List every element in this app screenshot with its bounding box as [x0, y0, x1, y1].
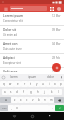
- staticText: ?123: [2, 107, 7, 110]
- staticText: 21 Feb: [52, 70, 61, 72]
- button[interactable]: h: [34, 89, 41, 95]
- button[interactable]: Lorem ipsum: [0, 12, 64, 25]
- staticText: o: [54, 82, 56, 86]
- button[interactable]: Search notes: [10, 6, 47, 11]
- button[interactable]: j: [41, 89, 48, 95]
- staticText: m: [50, 98, 53, 102]
- button[interactable]: t: [28, 81, 34, 87]
- button[interactable]: l: [55, 89, 62, 95]
- button[interactable]: Adipisci: [0, 54, 64, 67]
- button[interactable]: c: [24, 97, 30, 103]
- button[interactable]: d: [14, 89, 20, 95]
- button[interactable]: e: [14, 81, 21, 87]
- staticText: Adipisci: [3, 56, 15, 60]
- staticText: z: [14, 98, 16, 102]
- button[interactable]: g: [27, 89, 34, 95]
- button[interactable]: ipsum: [23, 74, 41, 80]
- staticText: i: [49, 82, 50, 86]
- staticText: Duis aute irure: [3, 47, 22, 51]
- button[interactable]: a: [2, 89, 8, 95]
- button[interactable]: m: [48, 97, 54, 103]
- staticText: Ut enim ad: [3, 33, 17, 37]
- button[interactable]: y: [34, 81, 40, 87]
- staticText: 04 Mar: [52, 42, 61, 46]
- button[interactable]: Settings: [14, 105, 20, 111]
- button[interactable]: f: [20, 89, 27, 95]
- staticText: r: [24, 82, 26, 86]
- staticText: e: [17, 82, 19, 86]
- button[interactable]: i: [46, 81, 52, 87]
- staticText: Velit esse: [3, 70, 18, 72]
- staticText: y: [36, 82, 38, 86]
- staticText: ,: [11, 106, 12, 110]
- staticText: lorem: [10, 75, 18, 79]
- staticText: 09 Mar: [52, 28, 61, 32]
- button[interactable]: v: [30, 97, 36, 103]
- staticText: f: [23, 90, 24, 94]
- staticText: x: [20, 98, 22, 102]
- staticText: Consectetur elit: [3, 19, 23, 23]
- button[interactable]: Amet con: [0, 40, 64, 53]
- button[interactable]: n: [42, 97, 48, 103]
- staticText: ipsum: [28, 75, 37, 79]
- staticText: u: [42, 82, 44, 86]
- staticText: Dolor sit: [3, 28, 16, 32]
- button[interactable]: Back: [10, 112, 18, 120]
- staticText: b: [38, 98, 40, 102]
- staticText: h: [37, 90, 39, 94]
- staticText: l: [58, 90, 59, 94]
- staticText: n: [44, 98, 46, 102]
- button[interactable]: z: [11, 97, 18, 103]
- button[interactable]: Comma: [8, 105, 14, 111]
- button[interactable]: Shift: [0, 97, 11, 103]
- staticText: a: [4, 90, 6, 94]
- button[interactable]: p: [58, 81, 64, 87]
- staticText: Amet con: [3, 42, 18, 46]
- staticText: c: [26, 98, 28, 102]
- button[interactable]: q: [0, 81, 7, 87]
- button[interactable]: o: [52, 81, 58, 87]
- button[interactable]: Home: [28, 112, 36, 120]
- button[interactable]: Emoji: [1, 75, 5, 79]
- staticText: j: [44, 90, 45, 94]
- staticText: .: [52, 106, 53, 110]
- button[interactable]: Enter: [55, 105, 64, 111]
- staticText: w: [9, 82, 12, 86]
- staticText: k: [51, 90, 53, 94]
- button[interactable]: Symbols: [0, 105, 8, 111]
- button[interactable]: Voice input: [59, 75, 64, 80]
- button[interactable]: r: [21, 81, 28, 87]
- button[interactable]: Dolor sit: [0, 26, 64, 39]
- staticText: s: [10, 90, 12, 94]
- staticText: v: [32, 98, 34, 102]
- button[interactable]: b: [36, 97, 42, 103]
- button[interactable]: Backspace: [54, 97, 64, 103]
- button[interactable]: Toggle list or grid view: [48, 5, 55, 12]
- button[interactable]: Period: [49, 105, 55, 111]
- staticText: d: [16, 90, 18, 94]
- button[interactable]: Recent apps: [46, 112, 54, 120]
- button[interactable]: u: [40, 81, 46, 87]
- staticText: dolor: [47, 75, 54, 79]
- staticText: Lorem ipsum: [3, 14, 24, 18]
- button[interactable]: Velit esse: [0, 68, 64, 74]
- staticText: 28 Feb: [52, 56, 61, 60]
- staticText: p: [60, 82, 62, 86]
- button[interactable]: x: [18, 97, 24, 103]
- button[interactable]: Account: [55, 5, 62, 12]
- button[interactable]: dolor: [41, 74, 59, 80]
- button[interactable]: Open navigation menu: [2, 5, 9, 12]
- button[interactable]: k: [48, 89, 55, 95]
- button[interactable]: lorem: [5, 74, 23, 80]
- staticText: Excepteur sint: [3, 61, 21, 65]
- button[interactable]: s: [8, 89, 14, 95]
- staticText: t: [30, 82, 32, 86]
- staticText: q: [3, 82, 5, 86]
- staticText: 12 Mar: [52, 14, 61, 18]
- staticText: g: [30, 90, 32, 94]
- button[interactable]: w: [7, 81, 14, 87]
- button[interactable]: Create new note: [52, 63, 61, 72]
